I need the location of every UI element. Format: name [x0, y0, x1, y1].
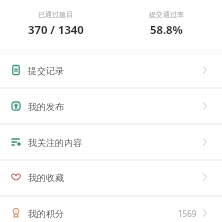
button[interactable]: My posts [0, 88, 222, 124]
staticText: 我关注的内容 [28, 137, 82, 148]
button[interactable]: Followed content [0, 124, 222, 160]
button[interactable]: 提交通过率 [111, 0, 222, 47]
button[interactable]: My points [0, 195, 222, 222]
button[interactable]: 已通过题目 [0, 0, 111, 47]
button[interactable]: Submission records [0, 52, 222, 88]
staticText: 370 / 1340 [28, 22, 84, 37]
staticText: 提交通过率 [149, 10, 184, 19]
staticText: 我的发布 [28, 101, 64, 112]
staticText: 我的积分 [28, 208, 64, 219]
staticText: 58.8% [150, 22, 183, 37]
staticText: 我的收藏 [28, 172, 64, 183]
staticText: 1569 [178, 208, 197, 219]
button[interactable]: My favourites [0, 159, 222, 195]
staticText: 已通过题目 [38, 10, 73, 19]
staticText: 提交记录 [28, 65, 64, 76]
